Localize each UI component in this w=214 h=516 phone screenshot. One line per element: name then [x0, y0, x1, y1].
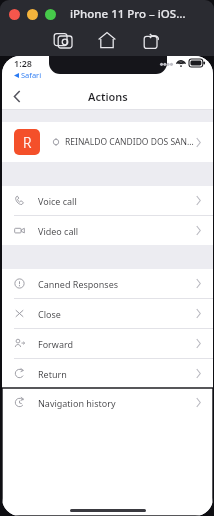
button[interactable]: Return: [2, 359, 213, 388]
button[interactable]: Forward: [2, 329, 213, 358]
staticText: Voice call: [38, 195, 196, 207]
button[interactable]: Navigation history: [2, 388, 213, 417]
button[interactable]: Home: [95, 28, 119, 52]
staticText: Return: [38, 368, 196, 380]
button[interactable]: Back: [2, 82, 32, 110]
staticText: Canned Responses: [38, 278, 196, 290]
button[interactable]: Voice call: [2, 186, 213, 215]
button[interactable]: R: [2, 122, 213, 162]
staticText: Close: [38, 308, 196, 320]
button[interactable]: Screenshot: [51, 28, 75, 52]
staticText: R: [23, 133, 32, 152]
staticText: Actions: [88, 89, 128, 104]
button[interactable]: Rotate: [139, 28, 163, 52]
staticText: REINALDO CANDIDO DOS SAN…: [65, 136, 196, 148]
button[interactable]: Canned Responses: [2, 269, 213, 298]
button[interactable]: Video call: [2, 216, 213, 245]
staticText: 1:28: [14, 57, 32, 69]
staticText: Navigation history: [38, 397, 196, 409]
staticText: Forward: [38, 338, 196, 350]
staticText: Safari: [21, 70, 42, 80]
button[interactable]: Close: [2, 299, 213, 328]
staticText: iPhone 11 Pro – iOS…: [70, 6, 186, 22]
staticText: Video call: [38, 225, 196, 237]
